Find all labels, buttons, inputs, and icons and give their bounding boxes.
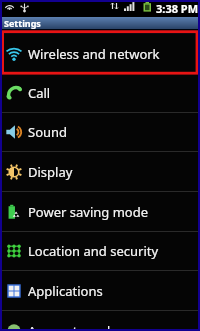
staticText: Location and security bbox=[28, 242, 159, 260]
button[interactable]: Location and security bbox=[0, 232, 200, 271]
staticText: 3:38 PM bbox=[156, 1, 199, 16]
staticText: Accounts and sync bbox=[28, 322, 141, 331]
button[interactable]: Sound bbox=[0, 113, 200, 152]
staticText: Sound bbox=[28, 123, 68, 141]
staticText: Wireless and network bbox=[28, 45, 160, 63]
button[interactable]: Power saving mode bbox=[0, 192, 200, 232]
staticText: Call bbox=[28, 84, 51, 102]
staticText: Applications bbox=[28, 282, 103, 300]
button[interactable]: Wireless and network bbox=[0, 34, 200, 74]
staticText: Display bbox=[28, 163, 73, 181]
button[interactable]: Display bbox=[0, 152, 200, 192]
staticText: Power saving mode bbox=[28, 203, 149, 221]
staticText: Settings bbox=[4, 17, 41, 29]
button[interactable]: Applications bbox=[0, 271, 200, 311]
button[interactable]: Accounts and sync bbox=[0, 311, 200, 331]
button[interactable]: Call bbox=[0, 74, 200, 113]
